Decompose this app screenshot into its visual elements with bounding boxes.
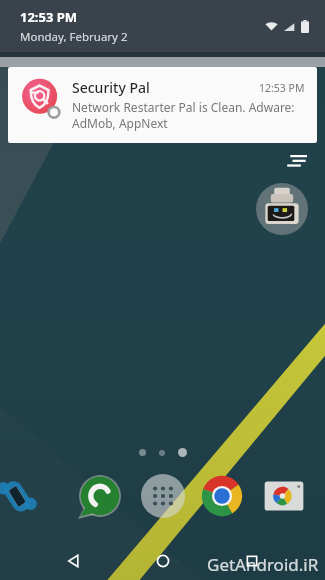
button[interactable]: Security Pal <box>8 67 317 143</box>
button[interactable]: Camera <box>262 474 306 518</box>
button[interactable]: Device assistant widget <box>256 183 308 235</box>
button[interactable]: WhatsApp <box>76 472 124 520</box>
button[interactable]: Back <box>58 546 88 576</box>
button[interactable]: List widget <box>285 155 307 169</box>
staticText: Monday, February 2 <box>20 29 128 45</box>
button[interactable]: Recent apps <box>237 546 267 576</box>
staticText: Security Pal <box>72 78 150 97</box>
staticText: 12:53 PM <box>20 8 78 26</box>
staticText: 12:53 PM <box>259 81 305 95</box>
button[interactable]: Chrome <box>198 472 246 520</box>
button[interactable]: Phone <box>0 473 40 519</box>
staticText: Network Restarter Pal is Clean. Adware: … <box>72 99 295 131</box>
staticText: GetAndroid.iR <box>207 553 319 576</box>
button[interactable]: Home <box>148 546 178 576</box>
button[interactable]: All apps <box>141 474 185 518</box>
